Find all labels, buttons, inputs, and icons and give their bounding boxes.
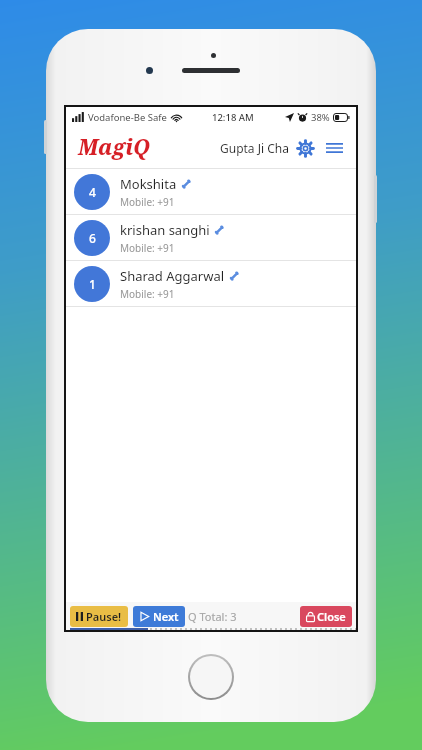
staticText: Pause! bbox=[86, 609, 122, 624]
button[interactable]: Settings bbox=[294, 137, 316, 159]
staticText: Close bbox=[317, 609, 346, 624]
staticText: 38% bbox=[311, 111, 330, 124]
staticText: Q Total: 3 bbox=[188, 609, 237, 624]
staticText: Mobile: +91 bbox=[120, 287, 175, 301]
staticText: Next bbox=[153, 609, 179, 624]
button[interactable]: 1 bbox=[66, 261, 356, 307]
button[interactable]: Next bbox=[133, 606, 185, 627]
staticText: Mokshita bbox=[120, 175, 177, 193]
staticText: 1 bbox=[89, 276, 96, 292]
staticText: Sharad Aggarwal bbox=[120, 267, 225, 285]
staticText: 4 bbox=[89, 184, 96, 200]
button[interactable]: Close bbox=[300, 606, 352, 627]
staticText: Vodafone-Be Safe bbox=[88, 111, 167, 124]
staticText: Mobile: +91 bbox=[120, 195, 175, 209]
staticText: 12:18 AM bbox=[212, 111, 254, 124]
button[interactable]: Menu bbox=[323, 137, 345, 159]
button[interactable]: 6 bbox=[66, 215, 356, 261]
button[interactable]: Home bbox=[188, 654, 234, 700]
staticText: MagiQ bbox=[78, 133, 150, 162]
button[interactable]: Gupta Ji Cha bbox=[220, 140, 289, 156]
staticText: krishan sanghi bbox=[120, 221, 210, 239]
staticText: Mobile: +91 bbox=[120, 241, 175, 255]
button[interactable]: 4 bbox=[66, 169, 356, 215]
button[interactable]: Pause! bbox=[70, 606, 128, 627]
staticText: 6 bbox=[89, 230, 96, 246]
